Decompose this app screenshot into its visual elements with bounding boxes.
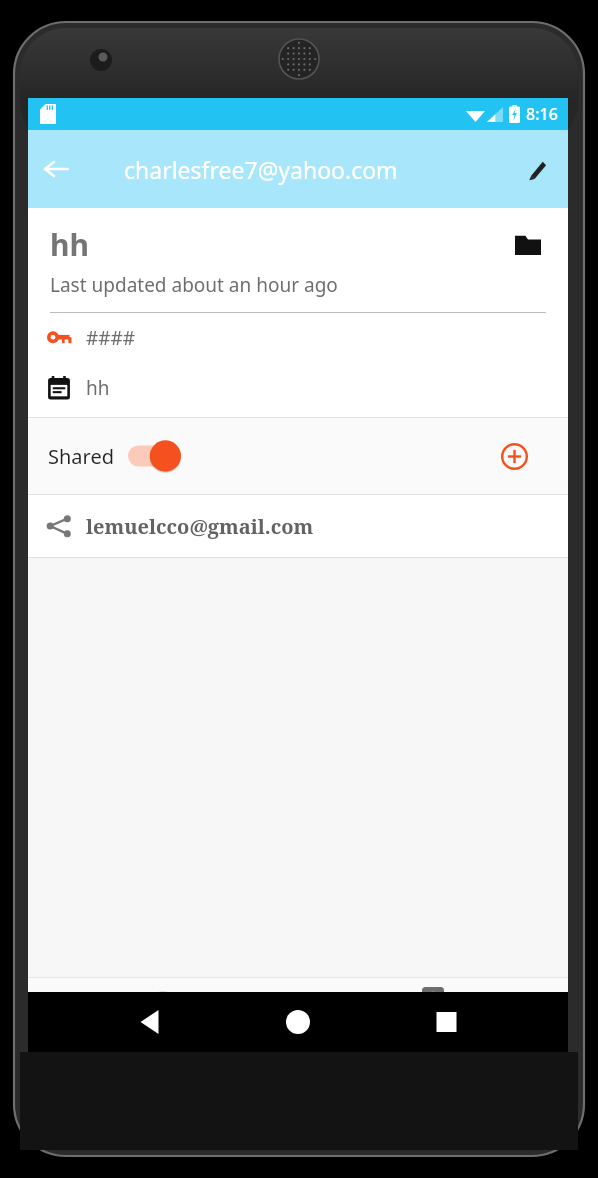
staticText: hh	[50, 224, 89, 265]
staticText: Passwords	[118, 1015, 209, 1040]
staticText: hh	[86, 375, 110, 401]
button[interactable]: Shared	[48, 439, 182, 473]
button[interactable]: hh	[28, 363, 568, 413]
staticText: lemuelcco@gmail.com	[86, 513, 314, 540]
staticText: charlesfree7@yahoo.com	[124, 154, 398, 185]
staticText: Last updated about an hour ago	[50, 272, 338, 298]
staticText: Shared	[48, 443, 114, 470]
button[interactable]: Passwords	[28, 978, 298, 1050]
button[interactable]: lemuelcco@gmail.com	[28, 495, 568, 557]
button[interactable]: Shared toggle	[128, 439, 182, 473]
staticText: New Password	[371, 1017, 495, 1042]
button[interactable]: Edit	[512, 145, 560, 193]
button[interactable]: Back	[28, 141, 84, 197]
staticText: 8:16	[526, 103, 558, 125]
button[interactable]: New Password	[298, 978, 568, 1050]
button[interactable]: Folder	[506, 222, 550, 266]
staticText: ####	[86, 325, 136, 351]
button[interactable]: ####	[28, 313, 568, 363]
button[interactable]: Add sharee	[492, 434, 536, 478]
